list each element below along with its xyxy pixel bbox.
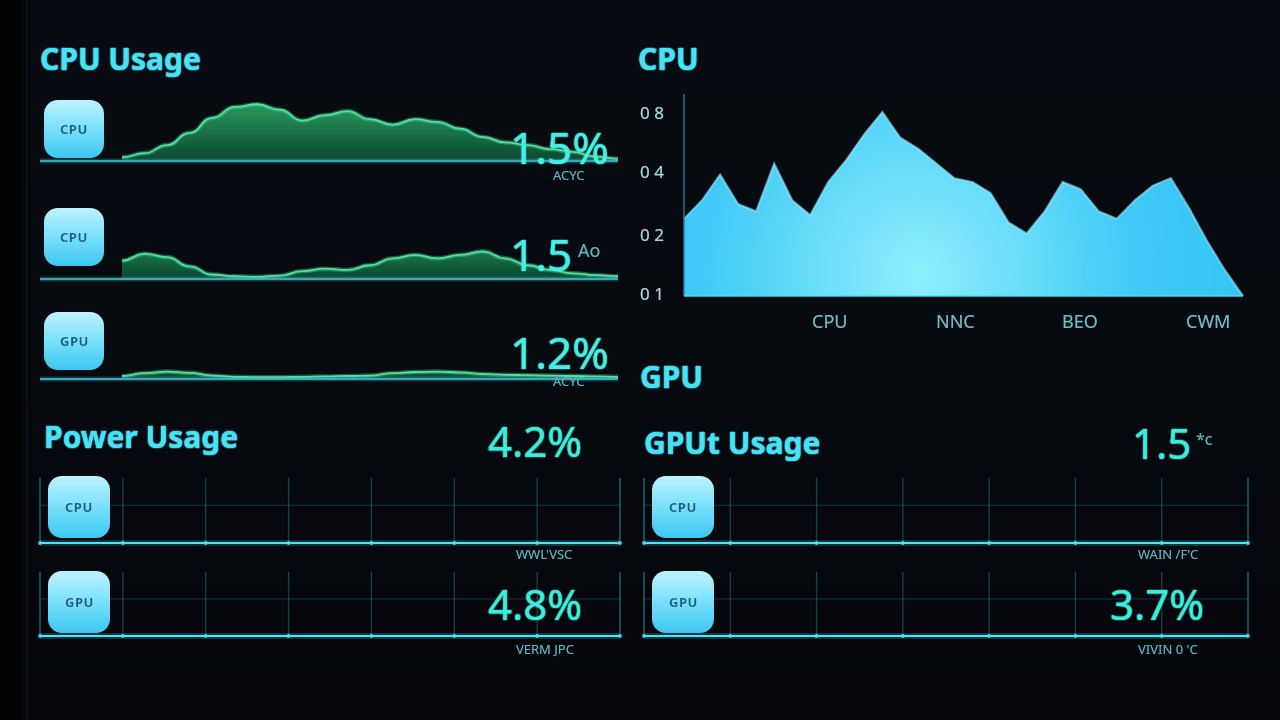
button[interactable]: CPU xyxy=(48,476,110,538)
staticText: CPU xyxy=(60,120,88,138)
staticText: 4.2% xyxy=(488,413,583,470)
staticText: CWM xyxy=(1186,309,1231,334)
staticText: CPU xyxy=(637,38,698,79)
staticText: Power Usage xyxy=(43,416,238,457)
staticText: 1.5 xyxy=(510,224,573,284)
staticText: 4.8% xyxy=(488,574,583,631)
staticText: 1.5 xyxy=(1131,414,1191,471)
staticText: 1.5 xyxy=(509,224,572,284)
staticText: GPU xyxy=(640,355,704,396)
staticText: 4.8% xyxy=(488,575,583,632)
staticText: 1.5 xyxy=(1132,415,1192,472)
staticText: GPUt Usage xyxy=(643,422,820,463)
button[interactable]: CPU xyxy=(44,208,104,266)
staticText: CPU Usage xyxy=(40,38,201,79)
button[interactable] xyxy=(36,28,626,398)
button[interactable]: GPU xyxy=(652,571,714,633)
staticText: GPU xyxy=(641,356,705,397)
staticText: 1.2% xyxy=(510,322,609,382)
button[interactable] xyxy=(634,404,1254,664)
staticText: 3.7% xyxy=(1109,575,1204,632)
staticText: 3.7% xyxy=(1110,574,1205,631)
staticText: GPU xyxy=(65,593,94,611)
button[interactable] xyxy=(36,404,626,664)
staticText: 1.5% xyxy=(511,117,610,177)
staticText: 3.7% xyxy=(1110,575,1205,632)
button[interactable]: CPU xyxy=(652,476,714,538)
staticText: 3.7% xyxy=(1110,576,1205,633)
staticText: CPU Usage xyxy=(40,39,201,80)
staticText: NNC xyxy=(936,309,975,334)
staticText: 1.5 xyxy=(1132,414,1192,471)
staticText: Ao xyxy=(578,238,601,263)
staticText: WAIN /F'C xyxy=(1138,545,1199,563)
staticText: 1.5 xyxy=(1133,414,1193,471)
staticText: 3.7% xyxy=(1111,575,1206,632)
staticText: 1.5 xyxy=(511,224,574,284)
button[interactable]: CPU xyxy=(44,100,104,158)
staticText: Power Usage xyxy=(45,416,240,457)
staticText: 1.5% xyxy=(510,117,609,177)
staticText: CPU xyxy=(60,228,88,246)
staticText: 4.2% xyxy=(489,412,584,469)
staticText: 1.2% xyxy=(511,322,610,382)
staticText: CPU Usage xyxy=(40,37,201,78)
staticText: GPU xyxy=(60,332,89,350)
staticText: GPU xyxy=(639,356,703,397)
staticText: 4.2% xyxy=(488,412,583,469)
staticText: *c xyxy=(1196,428,1213,450)
staticText: GPUt Usage xyxy=(644,423,821,464)
staticText: VERM JPC xyxy=(516,640,574,658)
staticText: 1.2% xyxy=(509,322,608,382)
button[interactable]: GPU xyxy=(44,312,104,370)
staticText: 1.5 xyxy=(510,225,573,285)
button[interactable] xyxy=(634,28,1254,348)
staticText: 4.8% xyxy=(488,576,583,633)
staticText: ACYC xyxy=(553,166,585,184)
staticText: GPU xyxy=(640,356,704,397)
staticText: 0 2 xyxy=(640,223,664,246)
staticText: Power Usage xyxy=(44,415,239,456)
staticText: CPU xyxy=(638,37,699,78)
staticText: GPUt Usage xyxy=(645,422,822,463)
staticText: 1.5% xyxy=(509,117,608,177)
staticText: CPU xyxy=(65,498,93,516)
staticText: CPU xyxy=(638,38,699,79)
staticText: 4.2% xyxy=(487,412,582,469)
staticText: CPU Usage xyxy=(41,38,202,79)
staticText: 1.5 xyxy=(1132,413,1192,470)
staticText: BEO xyxy=(1062,309,1098,334)
staticText: 1.2% xyxy=(510,321,609,381)
staticText: Power Usage xyxy=(44,417,239,458)
staticText: 0 1 xyxy=(640,282,664,305)
staticText: CPU xyxy=(812,309,848,334)
staticText: 4.2% xyxy=(488,411,583,468)
staticText: GPU xyxy=(640,357,704,398)
staticText: VIVIN 0 'C xyxy=(1138,640,1198,658)
staticText: CPU Usage xyxy=(39,38,200,79)
staticText: CPU xyxy=(638,39,699,80)
staticText: 1.5% xyxy=(510,118,609,178)
staticText: ACYC xyxy=(553,372,585,390)
staticText: 0 4 xyxy=(640,160,664,183)
staticText: 1.5% xyxy=(510,116,609,176)
staticText: GPUt Usage xyxy=(644,422,821,463)
staticText: 4.8% xyxy=(489,575,584,632)
staticText: GPU xyxy=(669,593,698,611)
staticText: 1.2% xyxy=(510,323,609,383)
staticText: CPU xyxy=(639,38,700,79)
staticText: 4.8% xyxy=(487,575,582,632)
staticText: CPU xyxy=(669,498,697,516)
staticText: 0 8 xyxy=(640,101,664,124)
staticText: 1.5 xyxy=(510,223,573,283)
staticText: Power Usage xyxy=(44,416,239,457)
staticText: WWL'VSC xyxy=(516,545,573,563)
staticText: GPUt Usage xyxy=(644,421,821,462)
button[interactable]: GPU xyxy=(48,571,110,633)
